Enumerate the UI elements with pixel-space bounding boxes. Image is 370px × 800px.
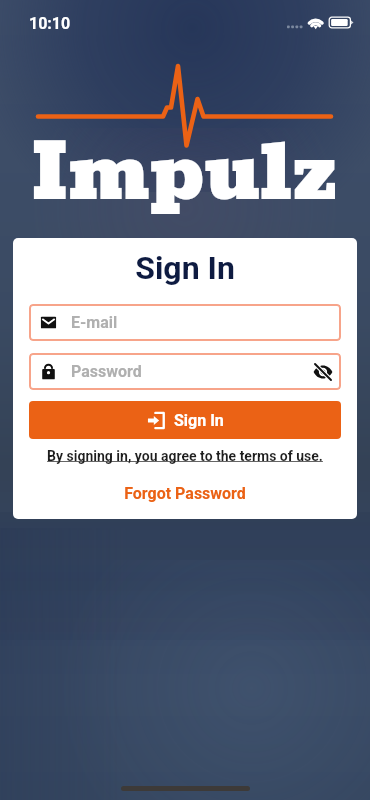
staticText: Password (71, 362, 142, 381)
staticText: 10:10 (29, 14, 71, 33)
staticText: E-mail (71, 313, 118, 332)
button[interactable]: By signing in, you agree to the terms of… (13, 448, 357, 464)
button[interactable]: E-mail (29, 304, 341, 341)
button[interactable]: Show password (307, 356, 339, 388)
button[interactable]: Sign In (29, 401, 341, 439)
button[interactable]: Forgot Password (13, 484, 357, 503)
button[interactable]: Password (29, 353, 341, 390)
staticText: Sign In (13, 249, 357, 287)
staticText: Impulz (32, 112, 338, 233)
staticText: Sign In (174, 411, 224, 430)
